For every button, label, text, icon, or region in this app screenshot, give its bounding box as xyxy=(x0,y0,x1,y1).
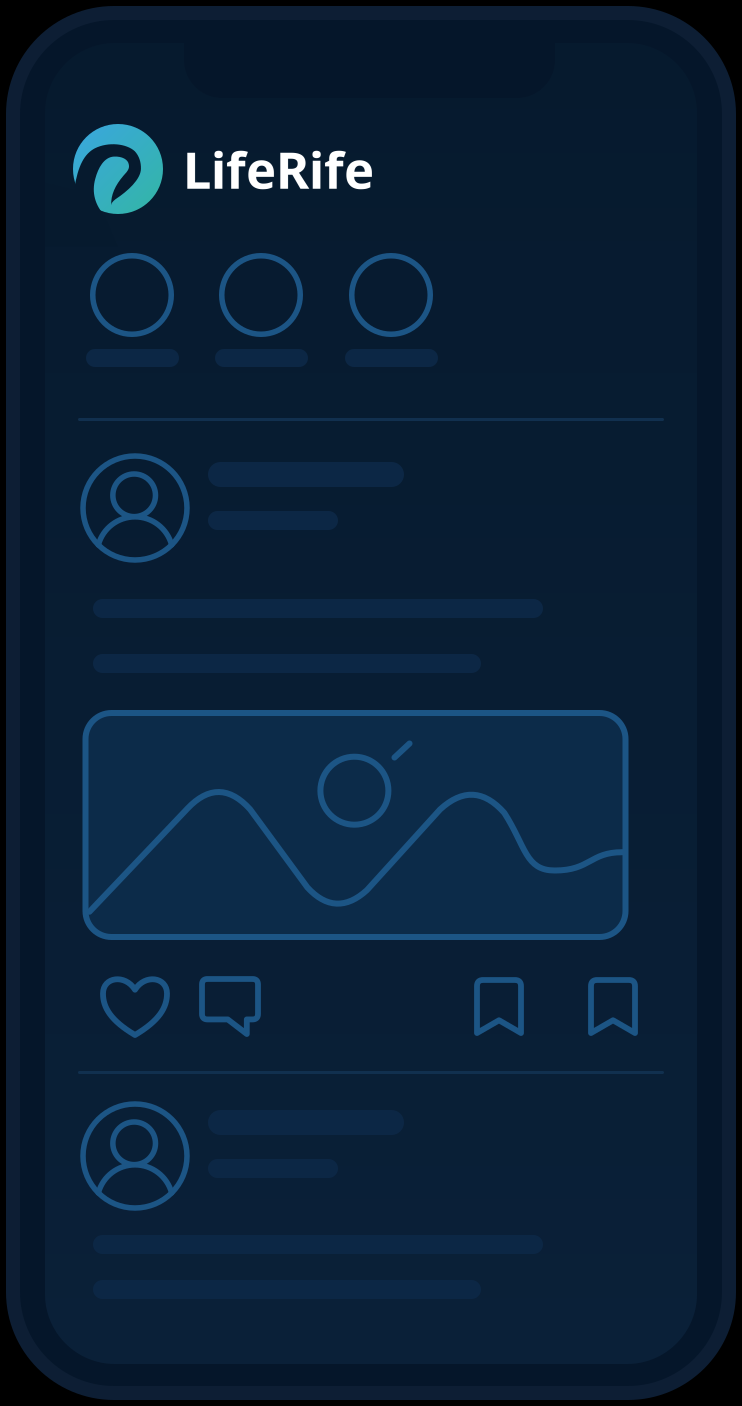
button[interactable]: Story xyxy=(222,256,300,334)
button[interactable]: LifeRife xyxy=(183,139,443,199)
button[interactable]: Share xyxy=(591,980,635,1033)
button[interactable]: Comment xyxy=(202,979,258,1034)
button[interactable]: Save xyxy=(477,980,521,1033)
button[interactable]: Story xyxy=(93,256,171,334)
staticText: LifeRife xyxy=(183,135,374,203)
button[interactable]: Story xyxy=(352,256,430,334)
button[interactable]: Like xyxy=(103,975,167,1035)
